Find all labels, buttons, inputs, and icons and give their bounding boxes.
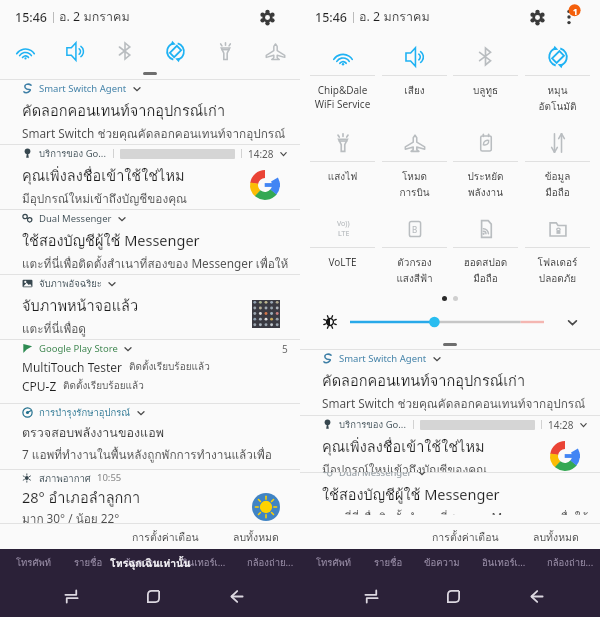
button[interactable]: ลบทั้งหมด <box>224 524 288 549</box>
button[interactable]: Smart Switch Agent <box>300 350 600 415</box>
button[interactable]: ฮอดสปอด <box>450 210 521 287</box>
button[interactable]: Chip&Dale <box>307 38 378 111</box>
staticText: 15:46 <box>15 9 48 26</box>
button[interactable]: รายชื่อ <box>74 555 103 570</box>
staticText: คัดลอกคอนเทนท์จากอุปกรณ์เก่า <box>22 99 226 122</box>
button[interactable]: Toggle 3 <box>150 34 200 68</box>
staticText: 10:55 <box>97 471 122 484</box>
staticText: 15:46 <box>315 9 348 26</box>
button[interactable]: Vo)) <box>307 210 378 269</box>
button[interactable]: แสงไฟ <box>307 124 378 185</box>
button[interactable]: Back <box>195 576 278 617</box>
staticText: โทรฉุกเฉินเท่านั้น <box>110 555 191 572</box>
button[interactable]: ข้อความ <box>124 555 160 570</box>
button[interactable]: อินเทอร์เ... <box>182 555 226 570</box>
staticText: แตะที่นี่เพื่อดู <box>22 319 86 338</box>
button[interactable]: กล้องถ่าย... <box>247 555 294 570</box>
button[interactable]: Dual Messenger <box>0 210 300 274</box>
staticText: 7 แอพที่ทำงานในพื้นหลังถูกพักการทำงานแล้… <box>22 445 292 464</box>
staticText: ใช้สองบัญชีผู้ใช้ Messenger <box>322 483 500 506</box>
staticText: บลูทูธ <box>450 83 521 99</box>
staticText: การตั้งค่าเตือน <box>132 529 199 544</box>
staticText: 14:28 <box>548 418 574 432</box>
button[interactable]: โทรศัพท์ <box>316 555 352 570</box>
staticText: มาก 30° / น้อย 22° <box>22 509 120 524</box>
button[interactable]: More options <box>556 4 582 30</box>
staticText: ข้อมูล <box>522 169 593 185</box>
button[interactable]: อินเทอร์เ... <box>482 555 526 570</box>
staticText: ติดตั้งเรียบร้อยแล้ว <box>129 359 210 375</box>
button[interactable]: กล้องถ่าย... <box>547 555 594 570</box>
staticText: จับภาพหน้าจอแล้ว <box>22 294 139 317</box>
button[interactable]: Dual Messenger <box>300 472 600 522</box>
staticText: การบำรุงรักษาอุปกรณ์ <box>39 405 131 420</box>
button[interactable]: ลบทั้งหมด <box>524 524 588 549</box>
button[interactable]: Toggle 1 <box>50 34 100 68</box>
button[interactable]: รายชื่อ <box>374 555 403 570</box>
button[interactable]: การตั้งค่าเตือน <box>123 524 208 549</box>
staticText: ตรวจสอบพลังงานของแอพ <box>22 423 164 443</box>
staticText: พลังงาน <box>450 185 521 201</box>
button[interactable]: Toggle 5 <box>250 34 300 68</box>
button[interactable]: Google Play Store <box>0 340 300 403</box>
button[interactable]: Back <box>495 576 578 617</box>
button[interactable]: ข้อความ <box>424 555 460 570</box>
staticText: WiFi Service <box>307 97 378 111</box>
staticText: มือถือ <box>450 271 521 287</box>
button[interactable]: Home <box>412 576 495 617</box>
staticText: Dual Messenger <box>39 212 112 225</box>
button[interactable]: Recents <box>330 576 412 617</box>
button[interactable]: Settings <box>256 6 278 28</box>
staticText: กล้องถ่าย... <box>247 555 294 570</box>
button[interactable]: Smart Switch Agent <box>0 80 300 144</box>
button[interactable]: ประหยัด <box>450 124 521 201</box>
staticText: คัดลอกคอนเทนท์จากอุปกรณ์เก่า <box>322 369 526 392</box>
staticText: แตะที่นี่เพื่อติดตั้งสำเนาที่สองของ Mess… <box>22 254 292 273</box>
staticText: ลบทั้งหมด <box>233 529 279 544</box>
button[interactable]: โทรศัพท์ <box>16 555 52 570</box>
button[interactable]: Toggle 4 <box>200 34 250 68</box>
staticText: 5 <box>282 342 288 356</box>
button[interactable]: บริการของ Go... <box>0 145 300 209</box>
staticText: มีอุปกรณ์ใหม่เข้าถึงบัญชีของคุณ <box>22 189 188 208</box>
button[interactable]: Toggle 0 <box>0 34 50 68</box>
staticText: โทรศัพท์ <box>16 555 52 570</box>
staticText: ฮอดสปอด <box>450 255 521 271</box>
staticText: อินเทอร์เ... <box>182 555 226 570</box>
staticText: Smart Switch Agent <box>39 82 127 95</box>
staticText: บริการของ Go... <box>339 417 406 432</box>
button[interactable]: โฟลเดอร์ <box>522 210 593 287</box>
staticText: 14:28 <box>248 147 274 161</box>
staticText: อินเทอร์เ... <box>482 555 526 570</box>
staticText: Smart Switch Agent <box>339 352 427 365</box>
button[interactable]: การบำรุงรักษาอุปกรณ์ <box>0 404 300 469</box>
staticText: รายชื่อ <box>74 555 103 570</box>
button[interactable]: Home <box>112 576 195 617</box>
button[interactable]: การตั้งค่าเตือน <box>423 524 508 549</box>
staticText: Smart Switch ช่วยคุณคัดลอกคอนเทนท์จากอุป… <box>22 124 292 143</box>
staticText: ติดตั้งเรียบร้อยแล้ว <box>63 378 144 394</box>
button[interactable]: Recents <box>30 576 112 617</box>
button[interactable]: บริการของ Go... <box>300 416 600 472</box>
button[interactable]: B <box>379 210 450 287</box>
button[interactable]: โหมด <box>379 124 450 201</box>
staticText: มีอุปกรณ์ใหม่เข้าถึงบัญชีของคุณ <box>322 460 488 472</box>
button[interactable]: จับภาพอัจฉริยะ <box>0 275 300 339</box>
button[interactable]: Toggle 2 <box>100 34 150 68</box>
staticText: 28° อำเภอลำลูกกา <box>22 486 141 509</box>
staticText: LTE <box>338 229 350 239</box>
button[interactable]: ข้อมูล <box>522 124 593 201</box>
button[interactable]: Settings <box>526 6 548 28</box>
staticText: แสงสีฟ้า <box>379 271 450 287</box>
staticText: แสงไฟ <box>307 169 378 185</box>
button[interactable]: บลูทูธ <box>450 38 521 99</box>
button[interactable]: สภาพอากาศ <box>0 470 300 524</box>
button[interactable]: เสียง <box>379 38 450 99</box>
staticText: หมุน <box>522 83 593 99</box>
staticText: อัตโนมัติ <box>522 99 593 115</box>
staticText: คุณเพิ่งลงชื่อเข้าใช้ใช่ไหม <box>322 435 485 458</box>
staticText: อ. 2 มกราคม <box>59 7 130 27</box>
staticText: โฟลเดอร์ <box>522 255 593 271</box>
button[interactable]: Expand brightness <box>562 312 582 332</box>
button[interactable]: หมุน <box>522 38 593 115</box>
